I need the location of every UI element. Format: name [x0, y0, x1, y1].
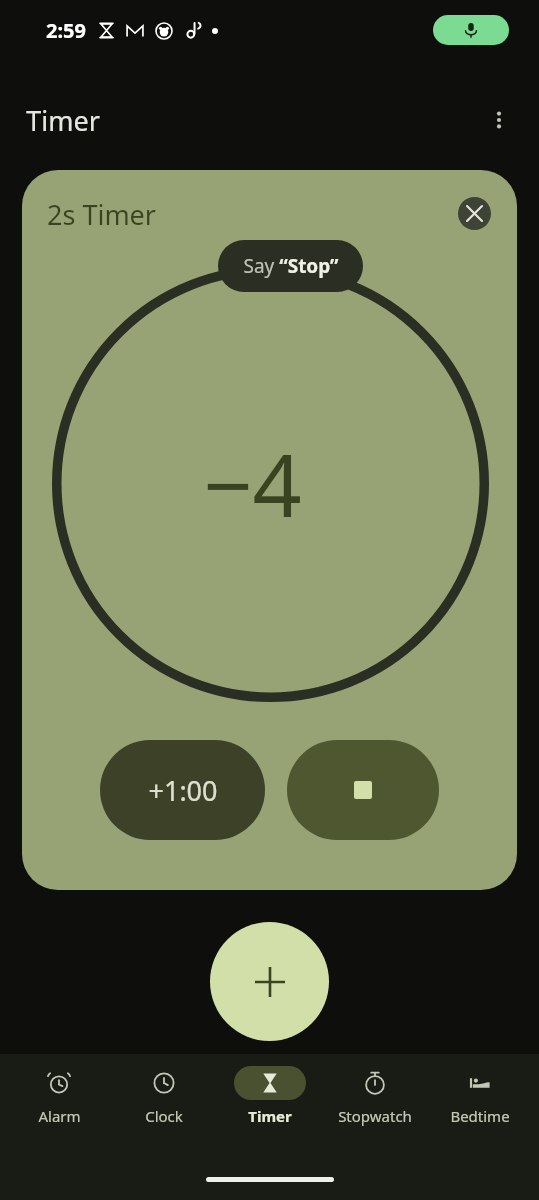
button[interactable]: Clock — [118, 1054, 210, 1126]
staticText: Stopwatch — [338, 1106, 412, 1126]
staticText: Timer — [248, 1106, 292, 1126]
button[interactable]: +1:00 — [100, 740, 265, 840]
button[interactable]: Say “Stop” — [218, 240, 363, 292]
staticText: Bedtime — [450, 1106, 510, 1126]
staticText: 2:59 — [46, 17, 86, 44]
button[interactable]: More options — [477, 98, 521, 142]
button[interactable]: Stop timer — [287, 740, 439, 840]
button[interactable]: Delete timer — [458, 197, 491, 230]
button[interactable]: Add timer — [210, 922, 329, 1041]
button[interactable]: Timer — [224, 1054, 316, 1126]
staticText: −4 — [203, 425, 302, 542]
button[interactable]: Microphone active — [433, 15, 509, 45]
staticText: Timer — [26, 102, 100, 139]
button[interactable]: Stopwatch — [329, 1054, 421, 1126]
staticText: Say “Stop” — [243, 253, 339, 279]
staticText: +1:00 — [148, 772, 218, 809]
staticText: 2s Timer — [47, 196, 156, 233]
staticText: Clock — [145, 1106, 183, 1126]
button[interactable]: Alarm — [13, 1054, 105, 1126]
staticText: Alarm — [38, 1106, 81, 1126]
button[interactable]: Bedtime — [434, 1054, 526, 1126]
